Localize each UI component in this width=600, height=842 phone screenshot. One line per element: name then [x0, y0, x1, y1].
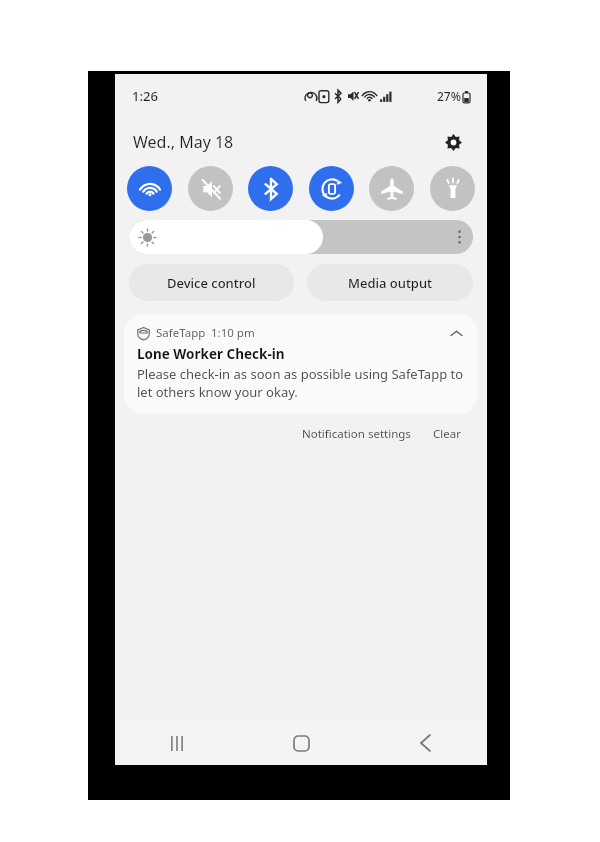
button[interactable]: Device control [129, 264, 294, 301]
staticText: 1:26 [132, 87, 158, 105]
button[interactable]: Collapse [447, 324, 465, 342]
button[interactable]: Bluetooth [248, 166, 293, 211]
staticText: Lone Worker Check-in [137, 345, 285, 363]
button[interactable]: Settings [437, 126, 469, 158]
button[interactable]: Recents [115, 721, 239, 765]
button[interactable]: Clear [429, 422, 465, 446]
staticText: Wed., May 18 [133, 131, 234, 153]
button[interactable]: Media output [307, 264, 473, 301]
button[interactable]: Back [363, 721, 487, 765]
staticText: Clear [433, 426, 461, 442]
button[interactable]: Flashlight [430, 166, 475, 211]
button[interactable]: Wi-Fi [127, 166, 172, 211]
button[interactable]: Brightness [129, 220, 473, 254]
staticText: Media output [348, 274, 433, 292]
button[interactable]: SafeTapp [124, 314, 478, 414]
staticText: 27% [437, 88, 461, 104]
button[interactable]: Airplane mode [369, 166, 414, 211]
button[interactable]: Home [239, 721, 363, 765]
staticText: Notification settings [302, 426, 411, 442]
staticText: 1:10 pm [211, 325, 255, 341]
button[interactable]: Sound off [188, 166, 233, 211]
staticText: Please check-in as soon as possible usin… [137, 365, 465, 401]
button[interactable]: Auto rotate [309, 166, 354, 211]
staticText: SafeTapp [156, 325, 206, 341]
button[interactable]: Notification settings [298, 422, 415, 446]
staticText: Device control [167, 274, 256, 292]
